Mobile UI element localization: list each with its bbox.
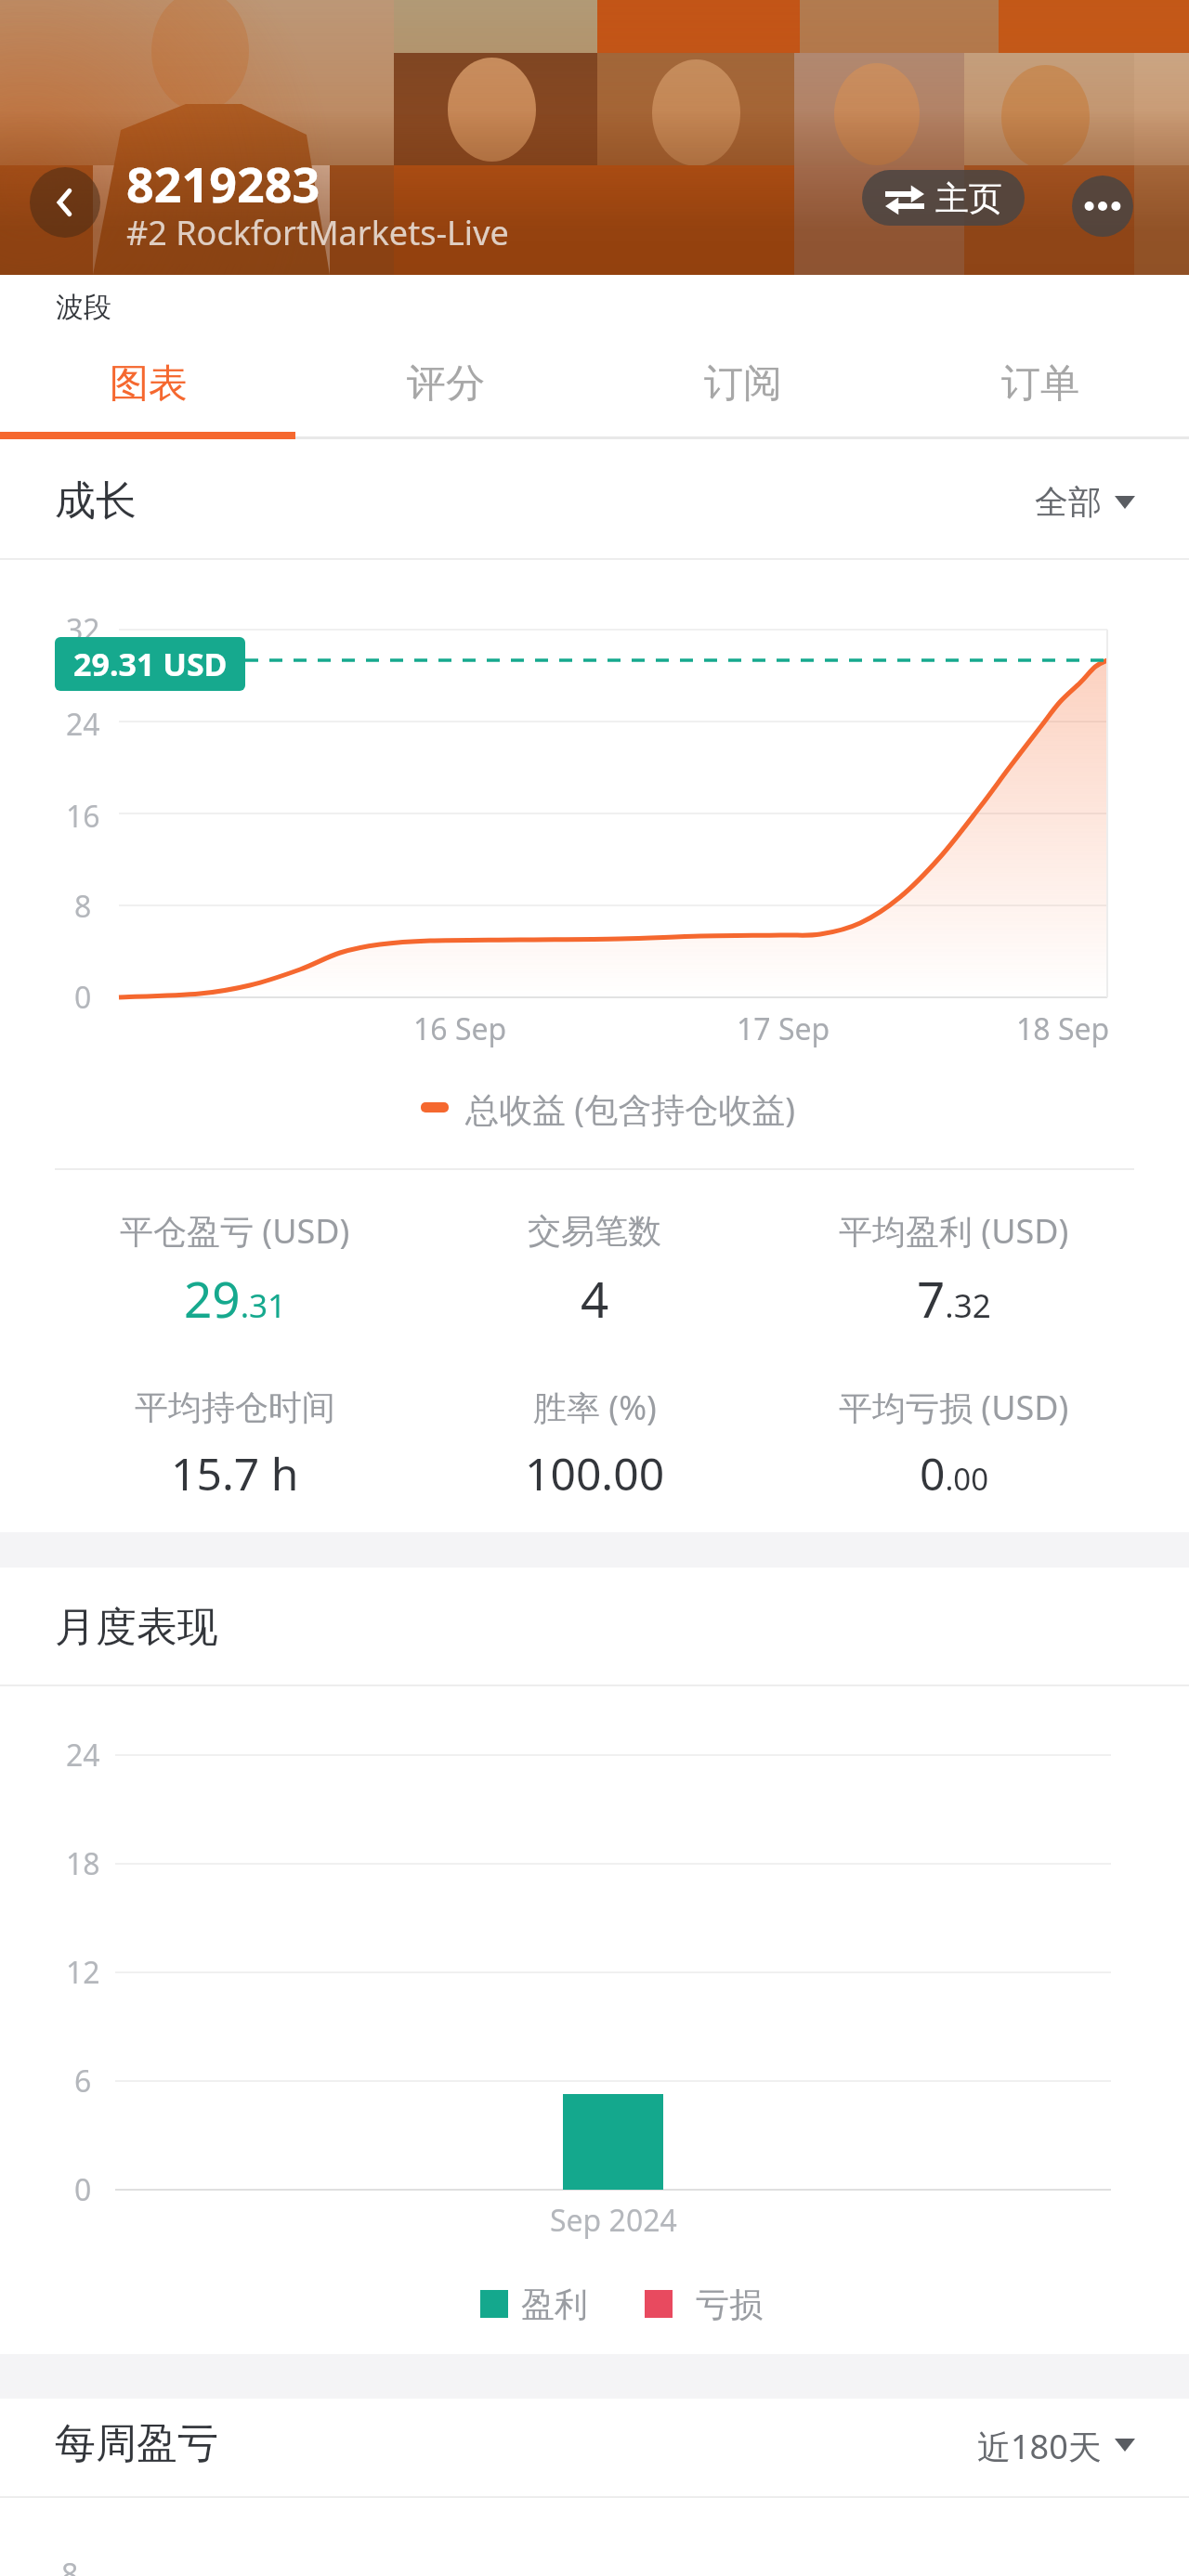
staticText: 12 <box>66 1952 100 1993</box>
staticText: 15.7 h <box>171 1443 299 1503</box>
staticText: 月度表现 <box>55 1602 218 1653</box>
staticText: 0 <box>74 977 92 1018</box>
staticText: 0.00 <box>920 1443 989 1503</box>
staticText: 29.31 <box>184 1265 287 1332</box>
staticText: 胜率 (%) <box>533 1385 657 1430</box>
button[interactable] <box>30 167 100 238</box>
button[interactable]: 评分 <box>297 353 594 414</box>
staticText: 32 <box>66 609 100 650</box>
staticText: 平均亏损 (USD) <box>839 1385 1069 1430</box>
staticText: 订单 <box>1001 359 1079 409</box>
staticText: 4 <box>581 1265 609 1332</box>
staticText: 亏损 <box>696 2283 763 2325</box>
staticText: 0 <box>74 2169 92 2210</box>
staticText: 平仓盈亏 (USD) <box>120 1208 350 1254</box>
staticText: 17 Sep <box>737 1008 830 1049</box>
staticText: 图表 <box>110 359 188 409</box>
staticText: 交易笔数 <box>528 1210 661 1252</box>
button[interactable]: 全部 <box>0 481 1135 522</box>
button[interactable] <box>1072 176 1133 237</box>
staticText: 24 <box>66 1735 100 1776</box>
staticText: 8 <box>74 886 92 927</box>
staticText: 8219283 <box>126 150 320 216</box>
staticText: 近180天 <box>977 2424 1102 2465</box>
button[interactable]: 主页 <box>862 170 1025 226</box>
staticText: 全部 <box>1035 481 1102 522</box>
staticText: #2 RockfortMarkets-Live <box>126 210 509 255</box>
staticText: 29.31 USD <box>73 643 228 685</box>
staticText: 成长 <box>55 475 137 527</box>
staticText: 波段 <box>56 290 111 325</box>
staticText: Sep 2024 <box>550 2200 677 2241</box>
staticText: 盈利 <box>521 2283 588 2325</box>
button[interactable]: 订单 <box>892 353 1189 414</box>
button[interactable]: 订阅 <box>594 353 892 414</box>
button[interactable]: 图表 <box>0 353 297 414</box>
staticText: 100.00 <box>525 1443 665 1503</box>
staticText: 订阅 <box>704 359 782 409</box>
staticText: 总收益 (包含持仓收益) <box>465 1086 795 1132</box>
staticText: 8 <box>61 2554 79 2576</box>
staticText: 7.32 <box>917 1265 991 1332</box>
staticText: 16 Sep <box>413 1008 507 1049</box>
button[interactable]: 近180天 <box>0 2424 1135 2465</box>
staticText: 18 <box>66 1843 100 1884</box>
staticText: 主页 <box>935 177 1002 219</box>
staticText: 18 Sep <box>1016 1008 1110 1049</box>
staticText: 16 <box>66 796 100 837</box>
staticText: 平均盈利 (USD) <box>839 1208 1069 1254</box>
staticText: 24 <box>66 704 100 745</box>
staticText: 评分 <box>407 359 485 409</box>
staticText: 每周盈亏 <box>55 2418 218 2469</box>
staticText: 平均持仓时间 <box>135 1386 335 1428</box>
staticText: 6 <box>74 2061 92 2101</box>
